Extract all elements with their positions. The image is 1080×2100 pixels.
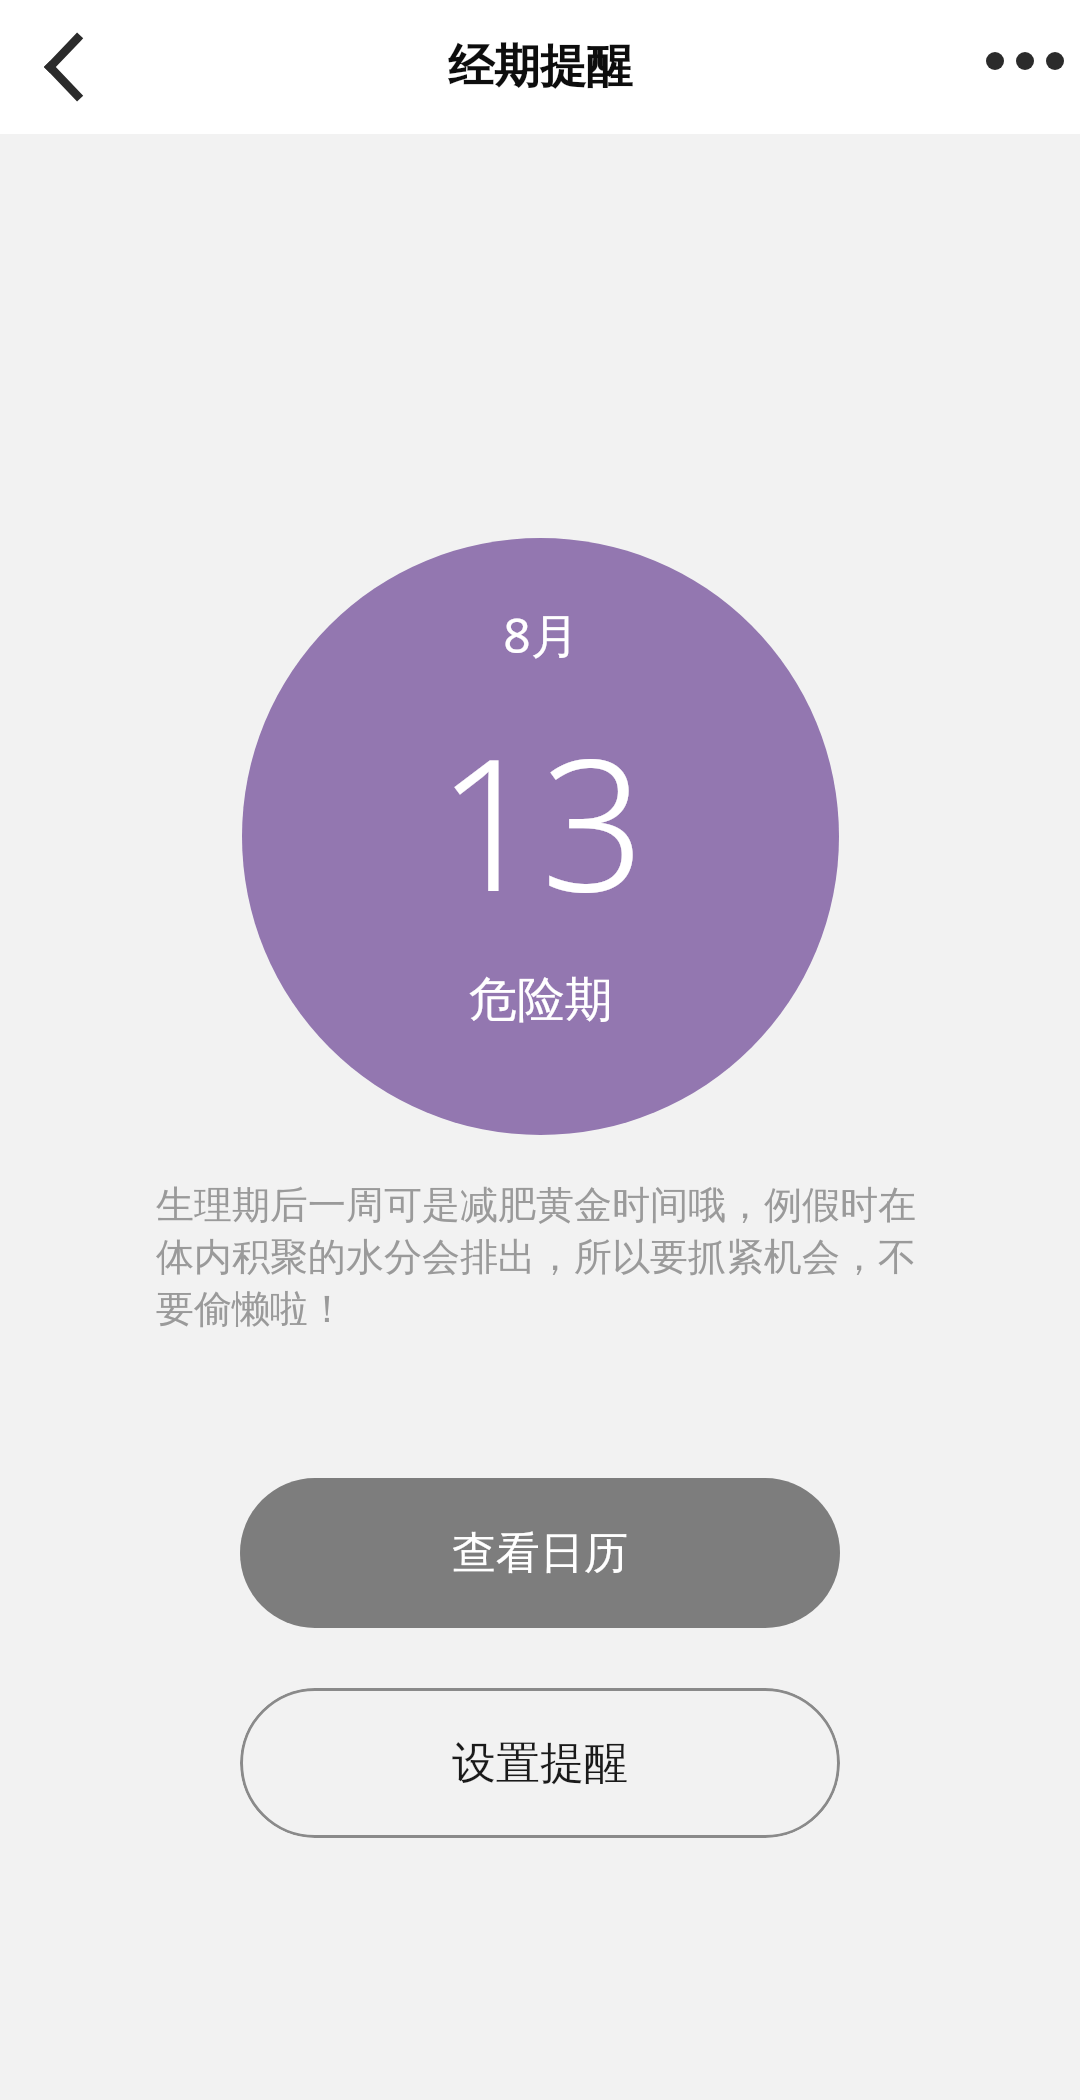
button[interactable]: 设置提醒: [240, 1688, 840, 1838]
button[interactable]: Back: [14, 17, 114, 117]
staticText: 生理期后一周可是减肥黄金时间哦，例假时在体内积聚的水分会排出，所以要抓紧机会，不…: [156, 1181, 922, 1333]
staticText: 设置提醒: [452, 1736, 628, 1791]
button[interactable]: 8月: [242, 538, 839, 1135]
staticText: 8月: [503, 602, 579, 668]
button[interactable]: More options: [970, 6, 1080, 116]
staticText: 经期提醒: [448, 38, 632, 96]
staticText: 查看日历: [452, 1526, 628, 1581]
staticText: 13: [437, 696, 645, 944]
staticText: 危险期: [469, 970, 613, 1030]
button[interactable]: 查看日历: [240, 1478, 840, 1628]
